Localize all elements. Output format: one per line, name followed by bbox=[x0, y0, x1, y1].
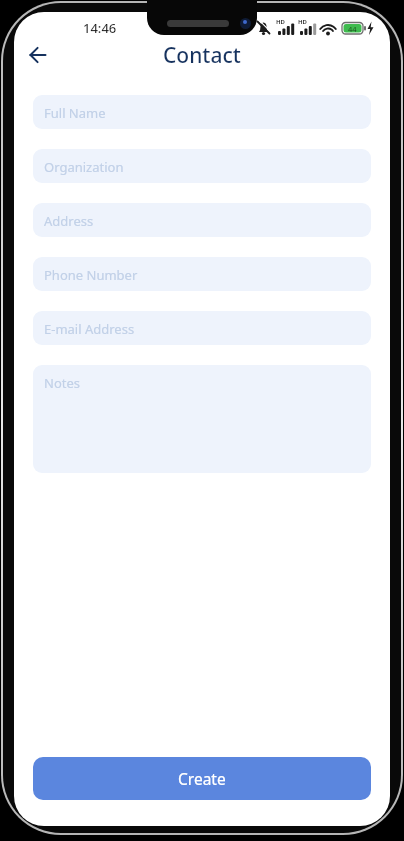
staticText: HD bbox=[298, 18, 307, 26]
staticText: Contact bbox=[163, 41, 241, 70]
button[interactable] bbox=[18, 35, 58, 75]
staticText: Address bbox=[44, 212, 94, 230]
button[interactable]: Create bbox=[33, 757, 371, 800]
staticText: 14:46 bbox=[83, 19, 117, 37]
staticText: HD bbox=[276, 18, 285, 26]
button[interactable]: Phone Number bbox=[33, 257, 371, 291]
button[interactable]: Full Name bbox=[33, 95, 371, 129]
button[interactable]: Address bbox=[33, 203, 371, 237]
button[interactable]: Organization bbox=[33, 149, 371, 183]
staticText: Full Name bbox=[44, 104, 106, 122]
staticText: E-mail Address bbox=[44, 320, 135, 338]
staticText: Notes bbox=[44, 374, 80, 392]
staticText: Phone Number bbox=[44, 266, 138, 284]
staticText: Organization bbox=[44, 158, 124, 176]
staticText: Create bbox=[178, 768, 226, 789]
button[interactable]: E-mail Address bbox=[33, 311, 371, 345]
staticText: 44 bbox=[348, 24, 357, 34]
